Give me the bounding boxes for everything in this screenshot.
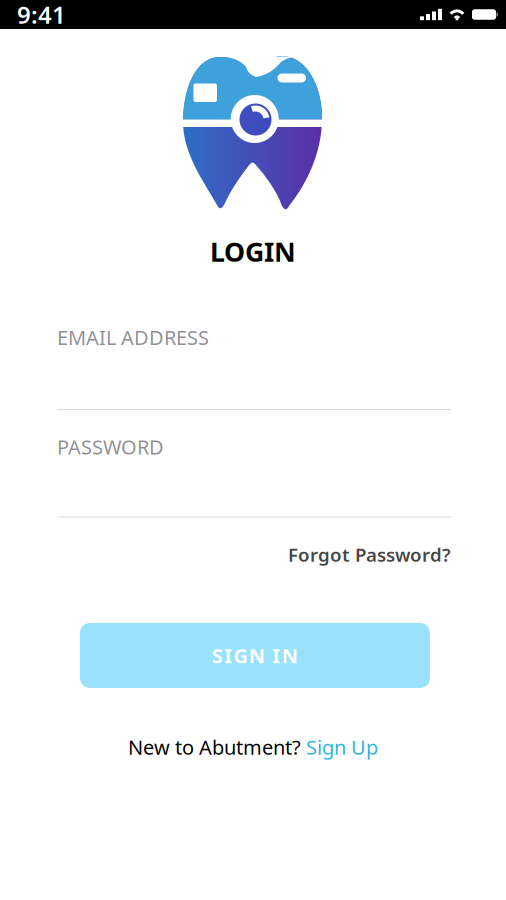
staticText: LOGIN (210, 234, 296, 269)
staticText: Sign Up (306, 734, 378, 760)
staticText: PASSWORD (57, 433, 164, 460)
button[interactable]: Forgot Password? (288, 542, 451, 567)
button[interactable]: PASSWORD (57, 433, 451, 517)
staticText: New to Abutment? (128, 734, 306, 760)
staticText: Forgot Password? (288, 542, 451, 567)
staticText: EMAIL ADDRESS (57, 324, 209, 351)
staticText: SIGN IN (212, 642, 298, 669)
button[interactable]: EMAIL ADDRESS (57, 324, 451, 410)
button[interactable]: SIGN IN (80, 623, 430, 688)
staticText: 9:41 (17, 0, 66, 30)
button[interactable]: Sign Up (306, 734, 378, 760)
